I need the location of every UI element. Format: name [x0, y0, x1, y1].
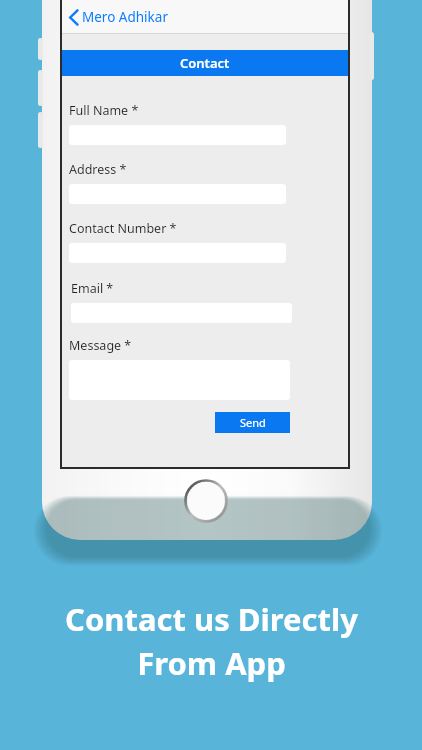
staticText: Contact Number *	[69, 220, 177, 237]
staticText: Contact	[180, 54, 230, 72]
staticText: Contact us Directly	[65, 598, 358, 640]
button[interactable]: Home	[184, 479, 228, 523]
button[interactable]: Contact	[62, 50, 348, 76]
button[interactable]: Mero Adhikar	[67, 4, 170, 30]
staticText: Email *	[71, 280, 114, 297]
staticText: From App	[137, 642, 286, 684]
staticText: Address *	[69, 161, 127, 178]
staticText: Full Name *	[69, 102, 139, 119]
button[interactable]: Send	[215, 412, 290, 433]
staticText: Send	[240, 415, 266, 430]
staticText: Message *	[69, 337, 132, 354]
staticText: Mero Adhikar	[82, 8, 168, 26]
